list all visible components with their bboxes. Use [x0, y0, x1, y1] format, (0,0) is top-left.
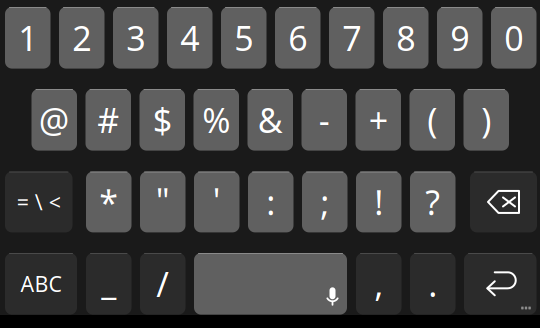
staticText: -	[319, 97, 330, 143]
button[interactable]: /	[140, 253, 185, 315]
staticText: ?	[425, 179, 440, 225]
staticText: .	[428, 261, 437, 307]
button[interactable]: 2	[59, 7, 104, 69]
staticText: 5	[234, 15, 253, 61]
staticText: ,	[374, 261, 383, 307]
staticText: '	[213, 177, 221, 223]
button[interactable]: -	[301, 89, 347, 151]
staticText: "	[156, 177, 170, 223]
button[interactable]: 8	[383, 7, 428, 69]
staticText: )	[481, 97, 491, 143]
staticText: 7	[342, 15, 361, 61]
button[interactable]: :	[248, 171, 293, 232]
staticText: %	[202, 97, 230, 143]
staticText: (	[427, 97, 437, 143]
button[interactable]: 4	[167, 7, 212, 69]
button[interactable]: 6	[275, 7, 320, 69]
button[interactable]: 9	[437, 7, 482, 69]
button[interactable]: )	[463, 89, 509, 151]
button[interactable]: Delete	[470, 171, 537, 232]
button[interactable]: 3	[113, 7, 158, 69]
button[interactable]: = \ <	[5, 171, 72, 232]
staticText: ABC	[20, 269, 61, 298]
staticText: +	[369, 97, 388, 143]
staticText: :	[266, 179, 275, 225]
staticText: @	[39, 97, 70, 143]
staticText: 6	[288, 15, 307, 61]
button[interactable]: space	[194, 253, 347, 315]
staticText: = \ <	[17, 187, 61, 216]
staticText: 0	[504, 15, 523, 61]
button[interactable]: +	[355, 89, 401, 151]
button[interactable]: ?	[410, 171, 455, 232]
staticText: 3	[126, 15, 145, 61]
button[interactable]: (	[409, 89, 455, 151]
staticText: !	[374, 179, 383, 225]
button[interactable]: .	[410, 253, 455, 315]
button[interactable]: _	[86, 253, 131, 315]
button[interactable]: Return	[464, 253, 536, 315]
button[interactable]: 1	[5, 7, 50, 69]
button[interactable]: $	[139, 89, 185, 151]
button[interactable]: 5	[221, 7, 266, 69]
staticText: _	[101, 259, 116, 305]
button[interactable]: ABC	[5, 253, 77, 315]
button[interactable]: ;	[302, 171, 347, 232]
staticText: *	[99, 179, 118, 225]
button[interactable]: %	[193, 89, 239, 151]
staticText: #	[97, 97, 119, 143]
button[interactable]: ,	[356, 253, 401, 315]
staticText: 4	[180, 15, 199, 61]
button[interactable]: *	[86, 171, 131, 232]
button[interactable]: '	[194, 171, 239, 232]
button[interactable]: &	[247, 89, 293, 151]
button[interactable]: !	[356, 171, 401, 232]
staticText: /	[156, 261, 169, 307]
button[interactable]: #	[85, 89, 131, 151]
staticText: 2	[72, 15, 91, 61]
button[interactable]: @	[31, 89, 77, 151]
staticText: ;	[320, 179, 329, 225]
staticText: 9	[450, 15, 469, 61]
button[interactable]: 0	[491, 7, 536, 69]
button[interactable]: 7	[329, 7, 374, 69]
staticText: 1	[18, 15, 37, 61]
staticText: 8	[396, 15, 415, 61]
staticText: $	[153, 97, 172, 143]
staticText: &	[258, 97, 283, 143]
button[interactable]: "	[140, 171, 185, 232]
